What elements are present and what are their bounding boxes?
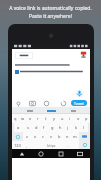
staticText: o: [77, 116, 80, 121]
staticText: k: [75, 125, 78, 130]
button[interactable]: Switch keyboard: [76, 150, 84, 158]
staticText: q: [14, 116, 17, 121]
staticText: c: [42, 134, 44, 139]
button[interactable]: Back: [18, 150, 26, 158]
staticText: z: [26, 134, 28, 139]
button[interactable]: f: [40, 123, 48, 132]
button[interactable]: a: [14, 123, 23, 132]
button[interactable]: b: [55, 132, 63, 141]
staticText: m: [73, 134, 77, 139]
button[interactable]: Voice message: [75, 89, 84, 98]
button[interactable]: s: [23, 123, 32, 132]
button[interactable]: ,: [23, 141, 30, 149]
staticText: x: [34, 134, 37, 139]
button[interactable]: y: [50, 114, 58, 123]
button[interactable]: z: [23, 132, 31, 141]
button[interactable]: o: [74, 114, 82, 123]
staticText: v: [50, 134, 53, 139]
staticText: i: [69, 116, 71, 121]
button[interactable]: Camera: [15, 100, 22, 107]
button[interactable]: k: [72, 123, 80, 132]
button[interactable]: n: [63, 132, 71, 141]
button[interactable]: https: [37, 141, 65, 149]
staticText: ,: [26, 143, 28, 148]
button[interactable]: i: [66, 114, 74, 123]
button[interactable]: Shift: [12, 132, 23, 141]
staticText: u: [61, 116, 64, 121]
staticText: r: [37, 116, 39, 121]
button[interactable]: .: [65, 141, 72, 149]
staticText: f: [43, 125, 45, 130]
button[interactable]: Enter: [79, 141, 90, 149]
staticText: .: [68, 143, 70, 148]
button[interactable]: Record: [80, 51, 87, 58]
button[interactable]: 123: [12, 141, 23, 149]
button[interactable]: Home: [37, 150, 45, 158]
button[interactable]: t: [42, 114, 50, 123]
staticText: l: [83, 125, 85, 130]
button[interactable]: r: [34, 114, 42, 123]
staticText: A voice link is automatically copied.: [4, 5, 97, 12]
staticText: https: [47, 143, 56, 148]
button[interactable]: Photos: [29, 100, 36, 107]
button[interactable]: j: [64, 123, 72, 132]
button[interactable]: GIF: [43, 100, 50, 107]
staticText: y: [53, 116, 56, 121]
button[interactable]: Recent apps: [57, 150, 65, 158]
button[interactable]: c: [39, 132, 47, 141]
button[interactable]: v: [47, 132, 55, 141]
button[interactable]: u: [58, 114, 66, 123]
staticText: s: [27, 125, 29, 130]
button[interactable]: Record: [12, 49, 90, 99]
button[interactable]: Backspace: [79, 132, 90, 141]
button[interactable]: q: [12, 114, 19, 123]
staticText: Tweet: [74, 101, 84, 106]
staticText: e: [29, 116, 32, 121]
button[interactable]: p: [82, 114, 90, 123]
staticText: g: [51, 125, 54, 130]
button[interactable]: Character count: [60, 100, 67, 107]
staticText: d: [35, 125, 38, 130]
button[interactable]: m: [71, 132, 79, 141]
button[interactable]: e: [26, 114, 34, 123]
staticText: n: [66, 134, 69, 139]
button[interactable]: w: [19, 114, 26, 123]
staticText: j: [67, 125, 69, 130]
staticText: a: [17, 125, 20, 130]
button[interactable]: Tweet: [71, 100, 87, 106]
staticText: b: [58, 134, 61, 139]
button[interactable]: g: [48, 123, 56, 132]
staticText: w: [21, 116, 25, 121]
staticText: h: [59, 125, 62, 130]
staticText: 123: [14, 143, 21, 148]
button[interactable]: x: [31, 132, 39, 141]
staticText: t: [45, 116, 47, 121]
staticText: p: [85, 116, 88, 121]
button[interactable]: h: [56, 123, 64, 132]
button[interactable]: l: [80, 123, 88, 132]
staticText: Paste it anywhere!: [4, 13, 97, 20]
button[interactable]: d: [32, 123, 40, 132]
